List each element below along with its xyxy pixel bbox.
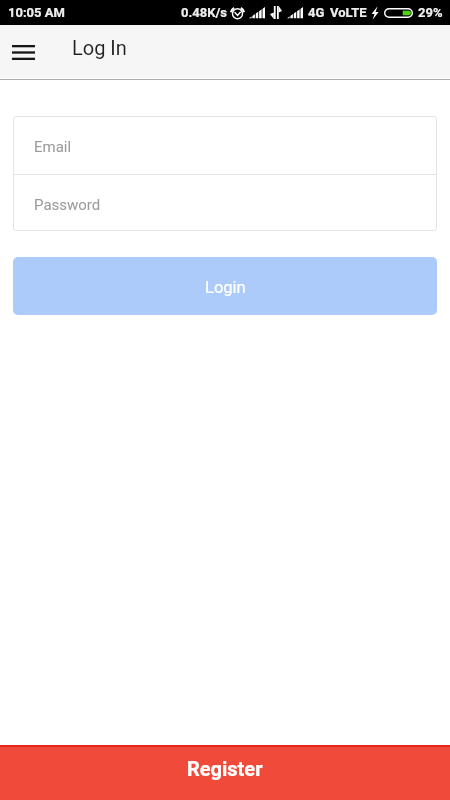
button[interactable]: Register: [0, 745, 450, 800]
staticText: 29%: [418, 5, 443, 20]
button[interactable]: Open navigation menu: [0, 29, 46, 75]
staticText: Log In: [72, 36, 127, 59]
staticText: Register: [187, 757, 263, 780]
button[interactable]: Login: [13, 257, 437, 315]
button[interactable]: Email: [13, 116, 437, 174]
staticText: VoLTE: [330, 5, 367, 20]
staticText: 10:05 AM: [8, 5, 65, 20]
staticText: Email: [34, 138, 72, 156]
staticText: Login: [205, 278, 246, 297]
staticText: 0.48K/s: [181, 5, 227, 20]
staticText: 4G: [308, 5, 325, 20]
staticText: Password: [34, 196, 101, 214]
button[interactable]: Password: [13, 175, 437, 231]
